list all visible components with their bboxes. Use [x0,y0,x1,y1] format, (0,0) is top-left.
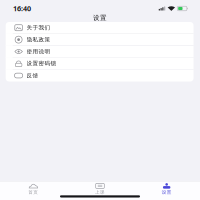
staticText: 使用说明 [26,48,50,55]
staticText: 上课 [95,189,105,195]
staticText: 关于我们 [26,24,50,31]
staticText: 首页 [28,189,38,195]
button[interactable]: 设置 [133,183,200,195]
button[interactable]: 使用说明 [6,46,193,58]
staticText: 设置 [162,189,172,195]
button[interactable]: 首页 [0,183,67,195]
button[interactable]: 关于我们 [6,22,193,34]
button[interactable]: 设置密码锁 [6,58,193,70]
staticText: 隐私政策 [26,36,50,43]
button[interactable]: 隐私政策 [6,34,193,46]
button[interactable]: 反馈 [6,70,193,81]
button[interactable]: 上课 [67,183,133,195]
staticText: 设置 [93,14,107,22]
staticText: 反馈 [26,72,38,79]
staticText: 16:40 [13,4,31,13]
staticText: 设置密码锁 [26,60,56,67]
